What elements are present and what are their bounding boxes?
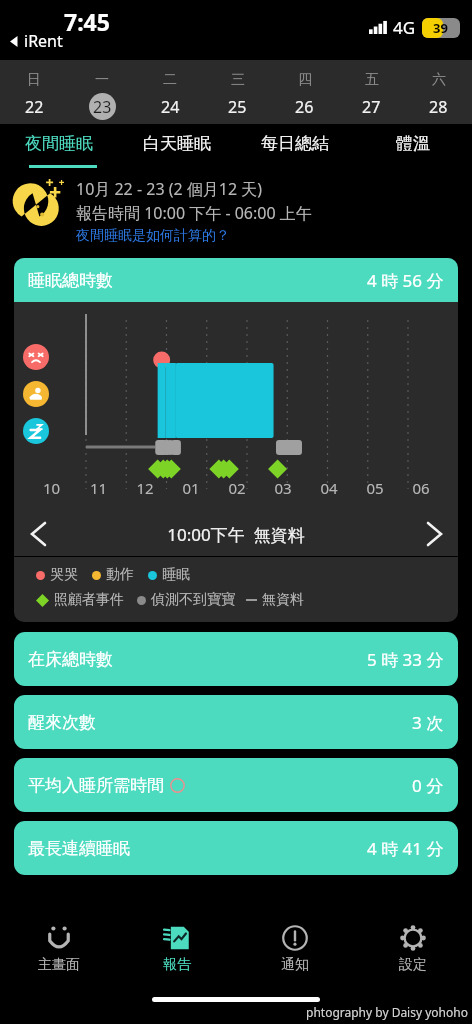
staticText: 04 bbox=[306, 478, 352, 498]
staticText: 10 bbox=[28, 478, 75, 498]
staticText: 一 bbox=[95, 71, 109, 89]
staticText: 12 bbox=[122, 478, 168, 498]
staticText: 27 bbox=[362, 96, 381, 118]
button[interactable]: 最長連續睡眠 bbox=[28, 821, 444, 875]
staticText: 照顧者事件 bbox=[54, 591, 124, 609]
staticText: 5 時 33 分 bbox=[367, 648, 444, 671]
staticText: 4 時 41 分 bbox=[367, 837, 444, 860]
staticText: iRent bbox=[24, 30, 63, 52]
staticText: 01 bbox=[168, 478, 214, 498]
staticText: 通知 bbox=[281, 956, 309, 974]
button[interactable]: 四 bbox=[271, 60, 338, 124]
staticText: 28 bbox=[429, 96, 448, 118]
button[interactable]: 六 bbox=[405, 60, 472, 124]
button[interactable]: 在床總時數 bbox=[28, 632, 444, 686]
staticText: 主畫面 bbox=[38, 956, 80, 974]
staticText: 4G bbox=[393, 16, 416, 39]
button[interactable]: Previous bbox=[14, 512, 62, 556]
button[interactable]: 一 bbox=[68, 60, 136, 124]
staticText: 平均入睡所需時間 bbox=[28, 775, 164, 796]
staticText: 夜間睡眠 bbox=[25, 133, 93, 154]
staticText: 報告 bbox=[163, 956, 191, 974]
staticText: 06 bbox=[398, 478, 444, 498]
button[interactable]: Next bbox=[410, 512, 458, 556]
button[interactable]: 白天睡眠 bbox=[118, 124, 236, 170]
staticText: 22 bbox=[25, 96, 44, 118]
staticText: 無資料 bbox=[262, 591, 304, 609]
staticText: 10月 22 - 23 (2 個月12 天) bbox=[76, 178, 263, 200]
staticText: 05 bbox=[352, 478, 398, 498]
staticText: 體溫 bbox=[396, 133, 430, 154]
button[interactable]: 每日總結 bbox=[236, 124, 354, 170]
button[interactable]: 日 bbox=[0, 60, 68, 124]
staticText: 二 bbox=[163, 71, 177, 89]
staticText: 3 次 bbox=[412, 711, 444, 734]
button[interactable]: 通知 bbox=[236, 915, 354, 987]
staticText: 設定 bbox=[399, 956, 427, 974]
button[interactable]: 夜間睡眠是如何計算的？ bbox=[76, 227, 230, 245]
staticText: 夜間睡眠是如何計算的？ bbox=[76, 227, 230, 245]
staticText: 0 分 bbox=[412, 774, 444, 797]
staticText: 在床總時數 bbox=[28, 649, 113, 670]
button[interactable]: 主畫面 bbox=[0, 915, 118, 987]
staticText: 26 bbox=[295, 96, 314, 118]
staticText: 日 bbox=[27, 71, 41, 89]
button[interactable]: 三 bbox=[204, 60, 271, 124]
staticText: 六 bbox=[432, 71, 446, 89]
staticText: 24 bbox=[161, 96, 180, 118]
staticText: 10:00下午 無資料 bbox=[62, 523, 410, 546]
staticText: 4 時 56 分 bbox=[367, 269, 444, 292]
staticText: 四 bbox=[298, 71, 312, 89]
staticText: 03 bbox=[260, 478, 306, 498]
staticText: 動作 bbox=[106, 566, 134, 584]
staticText: 每日總結 bbox=[261, 133, 329, 154]
staticText: 02 bbox=[214, 478, 260, 498]
button[interactable]: 設定 bbox=[354, 915, 472, 987]
staticText: 五 bbox=[365, 71, 379, 89]
staticText: 偵測不到寶寶 bbox=[151, 591, 235, 609]
button[interactable]: 五 bbox=[338, 60, 405, 124]
staticText: 哭哭 bbox=[50, 566, 78, 584]
staticText: 39 bbox=[433, 19, 448, 37]
button[interactable]: 體溫 bbox=[354, 124, 472, 170]
staticText: 11 bbox=[75, 478, 122, 498]
staticText: 醒來次數 bbox=[28, 712, 96, 733]
staticText: 三 bbox=[231, 71, 245, 89]
button[interactable]: 睡眠總時數 bbox=[28, 258, 444, 302]
button[interactable]: 報告 bbox=[118, 915, 236, 987]
staticText: 白天睡眠 bbox=[143, 133, 211, 154]
staticText: phtography by Daisy yohoho bbox=[306, 1004, 468, 1020]
staticText: 23 bbox=[93, 96, 112, 118]
staticText: 睡眠 bbox=[162, 566, 190, 584]
staticText: 睡眠總時數 bbox=[28, 270, 113, 291]
staticText: 報告時間 10:00 下午 - 06:00 上午 bbox=[76, 202, 312, 224]
button[interactable]: 二 bbox=[136, 60, 204, 124]
button[interactable]: 夜間睡眠 bbox=[0, 124, 118, 170]
button[interactable]: 醒來次數 bbox=[28, 695, 444, 749]
staticText: 7:45 bbox=[64, 6, 110, 37]
staticText: 最長連續睡眠 bbox=[28, 838, 130, 859]
button[interactable]: 平均入睡所需時間 bbox=[28, 758, 444, 812]
staticText: 25 bbox=[228, 96, 247, 118]
